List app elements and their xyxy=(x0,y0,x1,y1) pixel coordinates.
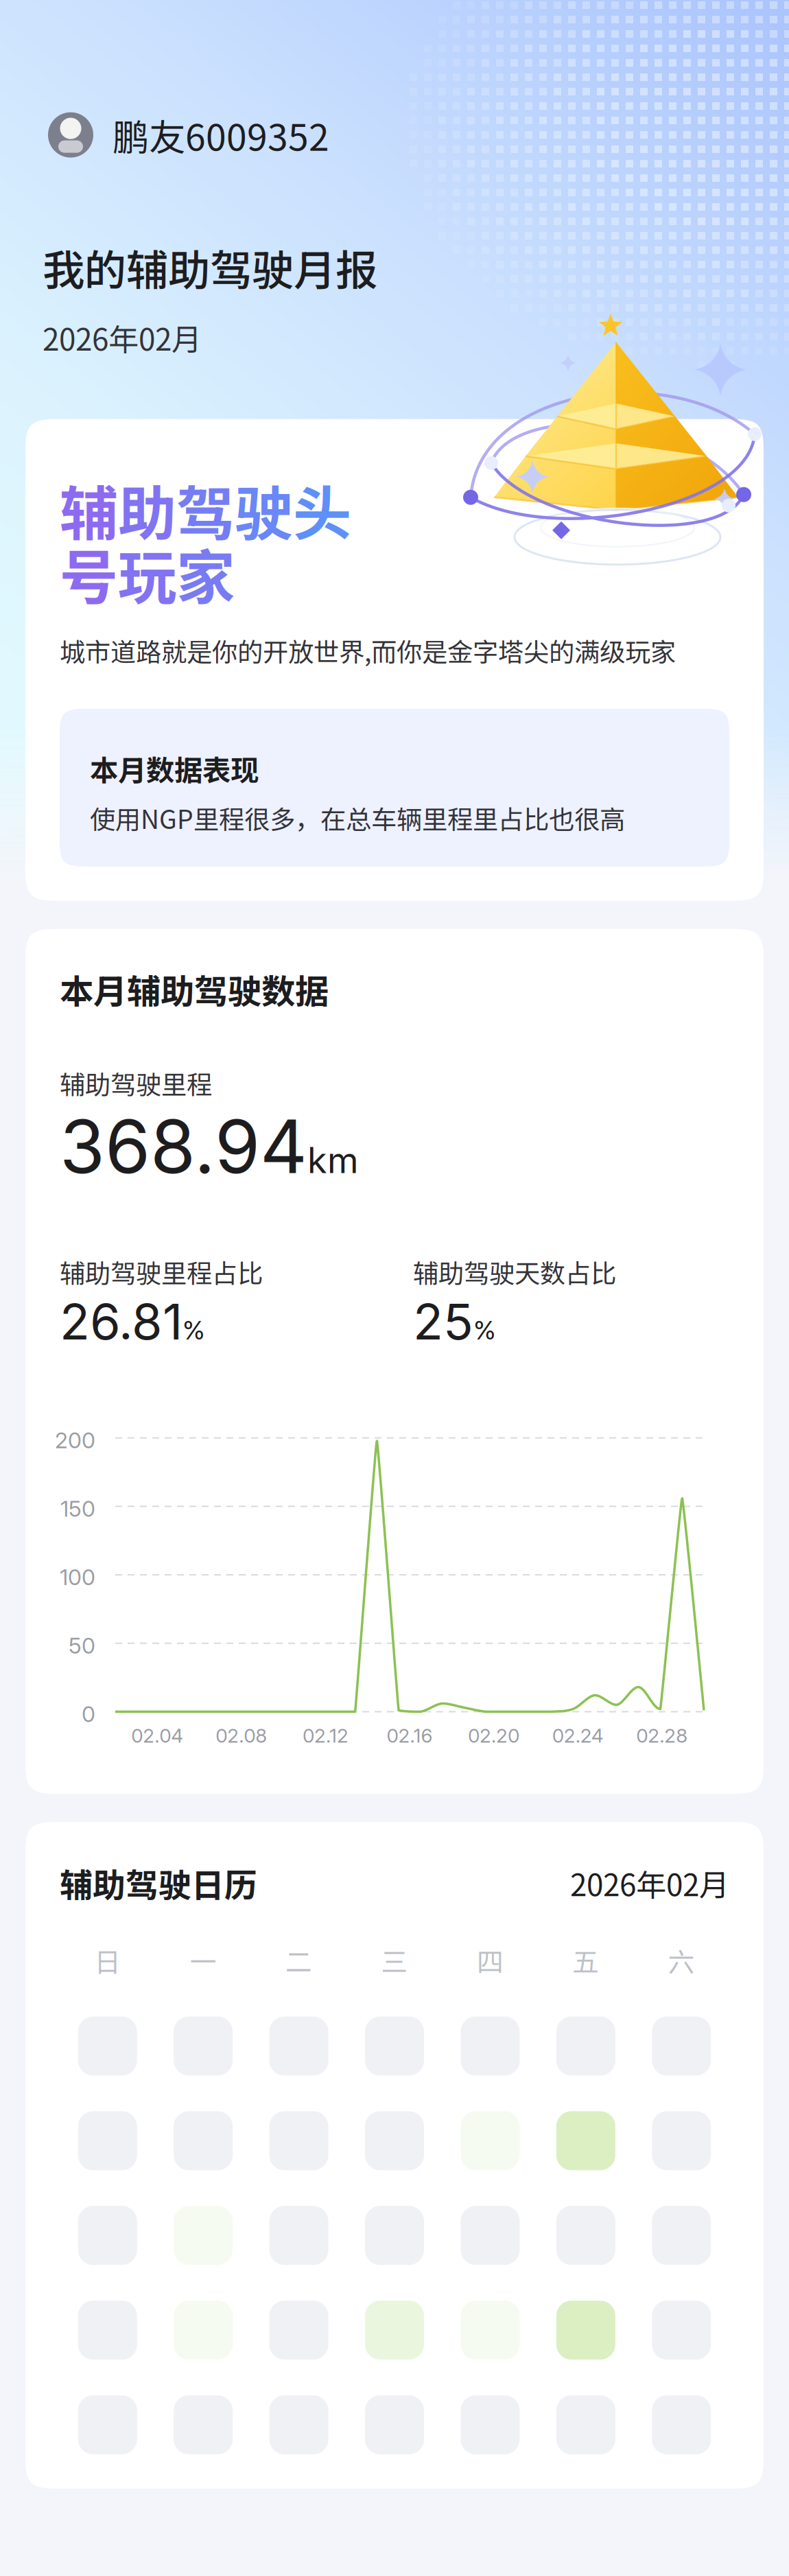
staticText: 驶 xyxy=(235,467,293,552)
staticText: 一 xyxy=(190,1941,217,1979)
button[interactable]: 鹏友6009352 xyxy=(0,104,349,166)
staticText: 四 xyxy=(477,1941,504,1979)
staticText: 02.28 xyxy=(636,1724,688,1747)
staticText: 家 xyxy=(176,531,235,616)
staticText: 日 xyxy=(94,1941,121,1979)
staticText: 头 xyxy=(293,467,351,552)
staticText: 本月数据表现 xyxy=(90,748,259,789)
staticText: 玩 xyxy=(118,531,176,616)
staticText: 02.12 xyxy=(302,1724,348,1747)
staticText: 0 xyxy=(82,1701,95,1727)
staticText: 鹏友6009352 xyxy=(113,108,329,161)
staticText: 150 xyxy=(60,1495,95,1522)
staticText: 02.08 xyxy=(216,1724,267,1747)
staticText: % xyxy=(182,1315,205,1346)
staticText: 辅助驾驶天数占比 xyxy=(413,1253,616,1290)
staticText: 城市道路就是你的开放世界,而你是金字塔尖的满级玩家 xyxy=(60,632,676,669)
staticText: 02.20 xyxy=(468,1724,519,1747)
staticText: 助 xyxy=(118,467,176,552)
staticText: km xyxy=(307,1139,359,1182)
staticText: 二 xyxy=(285,1941,312,1979)
staticText: 368.94 xyxy=(60,1102,307,1191)
staticText: 50 xyxy=(69,1632,95,1659)
staticText: 驾 xyxy=(176,467,235,552)
staticText: 100 xyxy=(60,1564,95,1590)
staticText: 辅助驾驶日历 xyxy=(60,1859,257,1907)
staticText: 2026年02月 xyxy=(43,316,202,359)
staticText: 号 xyxy=(60,531,118,616)
staticText: % xyxy=(473,1315,496,1346)
staticText: 六 xyxy=(668,1941,695,1979)
staticText: 辅助驾驶里程 xyxy=(60,1064,212,1102)
staticText: 五 xyxy=(572,1941,599,1979)
staticText: 本月辅助驾驶数据 xyxy=(60,965,329,1014)
staticText: 02.04 xyxy=(131,1724,183,1747)
staticText: 使用NGP里程很多，在总车辆里程里占比也很高 xyxy=(90,799,625,836)
staticText: 我的辅助驾驶月报 xyxy=(43,237,377,298)
staticText: 三 xyxy=(381,1941,408,1979)
staticText: 辅助驾驶里程占比 xyxy=(60,1253,263,1290)
staticText: 2026年02月 xyxy=(570,1861,729,1905)
staticText: 26.81 xyxy=(60,1292,182,1351)
staticText: 辅 xyxy=(60,467,118,552)
staticText: 02.16 xyxy=(387,1724,433,1747)
staticText: 02.24 xyxy=(552,1724,603,1747)
staticText: 25 xyxy=(413,1292,473,1351)
staticText: 200 xyxy=(55,1427,95,1453)
